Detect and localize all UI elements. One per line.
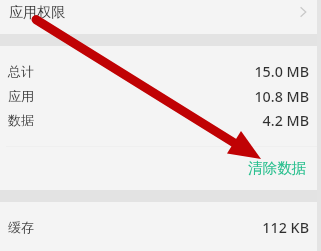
staticText: 清除数据 [248,159,307,177]
button[interactable]: 总计 [0,59,321,84]
staticText: 缓存 [8,219,35,236]
button[interactable]: 数据 [0,108,321,133]
staticText: 10.8 MB [254,87,309,106]
button[interactable]: 清除数据 [240,154,314,182]
staticText: 数据 [8,112,35,129]
staticText: 4.2 MB [262,111,309,130]
button[interactable]: 应用 [0,84,321,109]
staticText: 应用权限 [9,3,66,21]
other: 展开应用权限 [299,6,307,18]
button[interactable]: 缓存 [0,215,321,240]
staticText: 15.0 MB [254,62,309,81]
staticText: 112 KB [262,218,309,237]
staticText: 应用 [8,88,35,105]
staticText: 总计 [8,63,35,80]
button[interactable]: 应用权限 [0,0,321,34]
